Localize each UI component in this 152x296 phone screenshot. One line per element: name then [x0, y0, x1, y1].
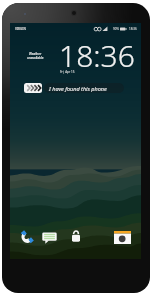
staticText: 18:36	[129, 27, 137, 31]
button[interactable]: Messages	[42, 230, 57, 245]
staticText: 90%	[113, 27, 119, 31]
button[interactable]: Phone	[19, 230, 34, 245]
staticText: unavailable	[27, 56, 44, 60]
button[interactable]: Lock	[71, 230, 81, 243]
button[interactable]: Camera	[114, 231, 131, 244]
staticText: I have found this phone	[49, 85, 107, 92]
staticText: Fri, Apr 15	[60, 70, 75, 74]
button[interactable]: Weather	[19, 52, 52, 60]
staticText: 18:36	[59, 35, 135, 76]
staticText: Weather	[29, 52, 42, 56]
staticText: VIRGIN	[15, 27, 26, 31]
button[interactable]: I have found this phone	[44, 83, 124, 93]
button[interactable]: Slide to respond	[24, 83, 42, 93]
